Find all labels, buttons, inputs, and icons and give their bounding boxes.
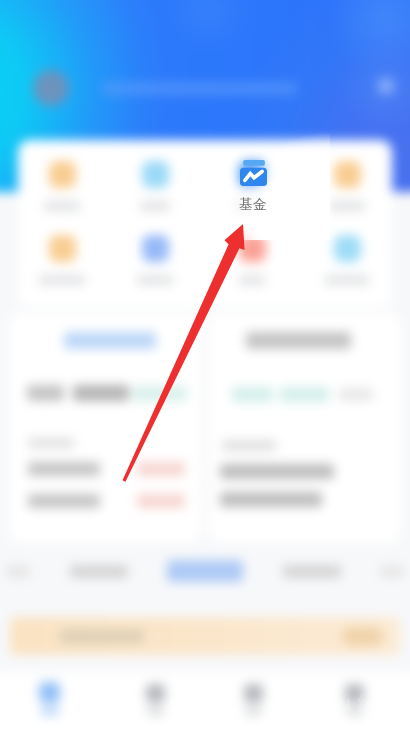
button[interactable]: 功能入口 bbox=[142, 161, 169, 188]
button[interactable]: 功能入口 bbox=[334, 235, 361, 262]
button[interactable]: 首页 bbox=[39, 682, 60, 703]
button[interactable]: 功能入口 bbox=[239, 235, 266, 262]
button[interactable]: 基金 bbox=[210, 150, 295, 220]
button[interactable]: 功能入口 bbox=[142, 235, 169, 262]
button[interactable]: 功能入口 bbox=[49, 161, 76, 188]
staticText: Baidu 经验 bbox=[292, 687, 402, 717]
button[interactable]: 我的 bbox=[345, 684, 364, 703]
staticText: 基金 bbox=[239, 196, 267, 214]
button[interactable]: 理财 bbox=[146, 684, 165, 703]
button[interactable]: 功能入口 bbox=[334, 161, 361, 188]
button[interactable]: 头像 bbox=[33, 70, 69, 106]
button[interactable]: 功能入口 bbox=[239, 161, 266, 188]
button[interactable]: 生活 bbox=[244, 684, 263, 703]
button[interactable]: 功能入口 bbox=[49, 235, 76, 262]
